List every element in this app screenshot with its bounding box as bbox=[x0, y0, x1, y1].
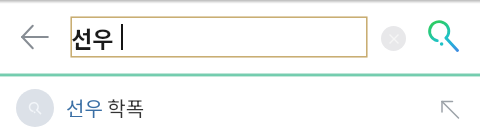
staticText: 선우 학폭 bbox=[66, 93, 145, 122]
button[interactable]: Search bbox=[422, 14, 462, 54]
button[interactable]: 선우 학폭 bbox=[0, 76, 480, 139]
button[interactable]: 선우 bbox=[70, 16, 368, 58]
button[interactable]: Clear search text bbox=[381, 26, 406, 51]
staticText: 선우 bbox=[71, 21, 114, 54]
button[interactable]: Fill query into search box bbox=[430, 90, 470, 130]
button[interactable]: Back bbox=[9, 11, 61, 63]
